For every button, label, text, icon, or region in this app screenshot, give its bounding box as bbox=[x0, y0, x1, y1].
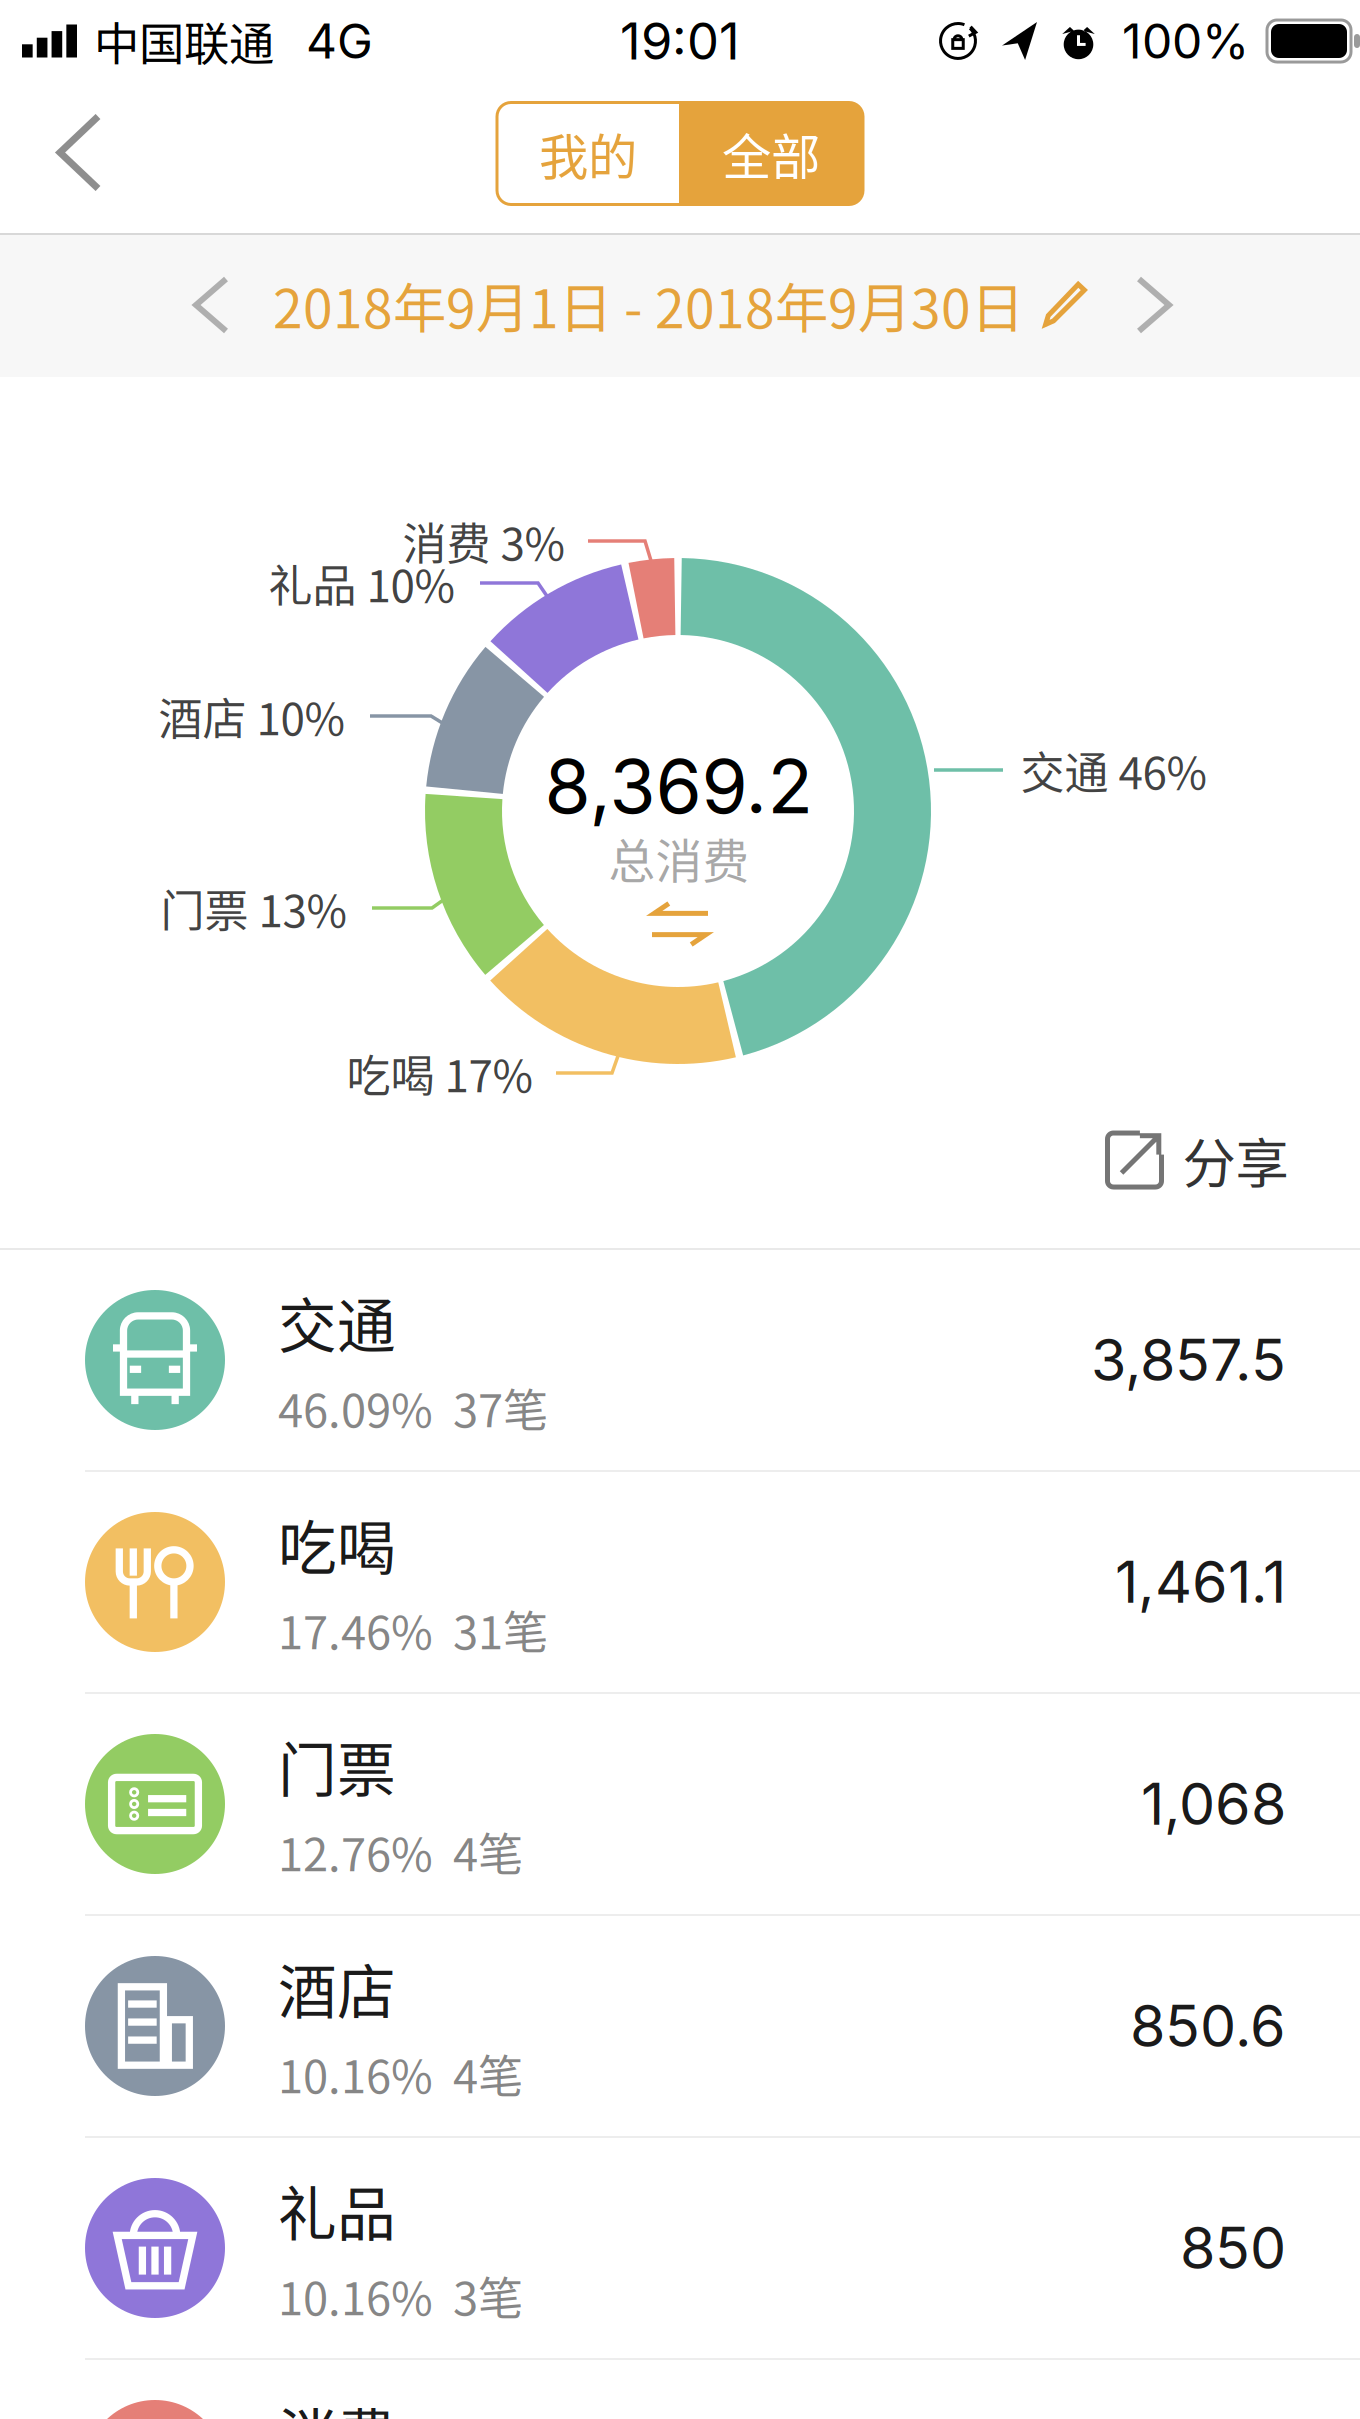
button[interactable]: 我的 bbox=[497, 102, 679, 204]
staticText: 12.76% 4笔 bbox=[278, 1819, 523, 1884]
staticText: 10.16% 3笔 bbox=[278, 2263, 523, 2328]
button[interactable]: Next period bbox=[1106, 253, 1197, 357]
staticText: 4G bbox=[306, 12, 373, 70]
button[interactable]: Back bbox=[16, 86, 142, 218]
staticText: 19:01 bbox=[620, 10, 740, 72]
button[interactable]: Share bbox=[1087, 1103, 1308, 1217]
staticText: 门票 bbox=[278, 1724, 396, 1809]
staticText: 酒店 bbox=[278, 1946, 396, 2031]
staticText: 交通 46% bbox=[1020, 738, 1207, 802]
staticText: 1,461.1 bbox=[1115, 1547, 1286, 1617]
staticText: 门票 13% bbox=[160, 876, 347, 940]
staticText: 全部 bbox=[722, 118, 820, 189]
button[interactable]: 交通 bbox=[0, 1250, 1360, 1470]
button[interactable]: 全部 bbox=[679, 102, 863, 204]
staticText: 2018年9月1日 - 2018年9月30日 bbox=[273, 266, 1024, 344]
staticText: 礼品 bbox=[278, 2168, 396, 2253]
staticText: 17.46% 31笔 bbox=[278, 1597, 548, 1662]
staticText: 吃喝 bbox=[278, 1502, 396, 1587]
staticText: 礼品 10% bbox=[268, 551, 455, 615]
staticText: 分享 bbox=[1182, 1121, 1288, 1199]
button[interactable]: 消费 bbox=[0, 2360, 1360, 2419]
staticText: 中国联通 bbox=[94, 8, 274, 74]
staticText: 交通 bbox=[278, 1280, 396, 1365]
staticText: 吃喝 17% bbox=[346, 1041, 533, 1105]
staticText: 我的 bbox=[539, 118, 637, 189]
button[interactable]: 门票 bbox=[0, 1694, 1360, 1914]
staticText: 酒店 10% bbox=[158, 684, 345, 748]
staticText: 3,857.5 bbox=[1091, 1325, 1286, 1395]
button[interactable]: Edit date range bbox=[1024, 254, 1106, 356]
staticText: 消费 3% bbox=[402, 509, 565, 573]
staticText: 10.16% 4笔 bbox=[278, 2041, 523, 2106]
staticText: 100% bbox=[1122, 12, 1249, 70]
staticText: 850 bbox=[1180, 2213, 1286, 2283]
staticText: 8,369.2 bbox=[544, 741, 813, 831]
staticText: 消费 bbox=[278, 2390, 396, 2419]
button[interactable]: 礼品 bbox=[0, 2138, 1360, 2358]
button[interactable]: 吃喝 bbox=[0, 1472, 1360, 1692]
button[interactable]: 酒店 bbox=[0, 1916, 1360, 2136]
staticText: 850.6 bbox=[1130, 1991, 1286, 2061]
staticText: 1,068 bbox=[1141, 1769, 1286, 1839]
staticText: 46.09% 37笔 bbox=[278, 1375, 548, 1440]
button[interactable]: Previous period bbox=[163, 253, 273, 357]
staticText: 总消费 bbox=[608, 824, 749, 892]
